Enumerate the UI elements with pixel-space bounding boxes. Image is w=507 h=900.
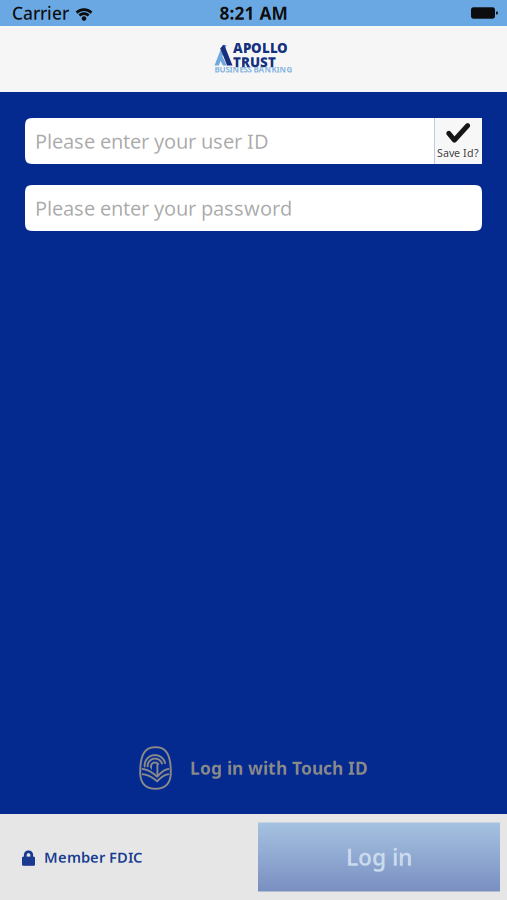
button[interactable]: Please enter your password — [25, 185, 482, 231]
staticText: APOLLO — [233, 39, 288, 57]
staticText: Member FDIC — [44, 847, 142, 867]
button[interactable]: Member FDIC — [0, 814, 158, 900]
staticText: Log in with Touch ID — [190, 756, 368, 779]
button[interactable]: Please enter your user ID — [25, 118, 482, 164]
staticText: Please enter your password — [35, 195, 292, 221]
staticText: BUSINESS BANKING — [214, 64, 292, 75]
button[interactable]: Log in — [258, 822, 500, 891]
staticText: Save Id? — [437, 146, 479, 160]
staticText: TRUST — [233, 53, 276, 71]
button[interactable]: Log in with Touch ID — [131, 743, 376, 793]
staticText: 8:21 AM — [219, 1, 287, 24]
staticText: Log in — [346, 842, 412, 872]
staticText: Please enter your user ID — [35, 128, 269, 154]
staticText: Carrier — [12, 1, 69, 24]
